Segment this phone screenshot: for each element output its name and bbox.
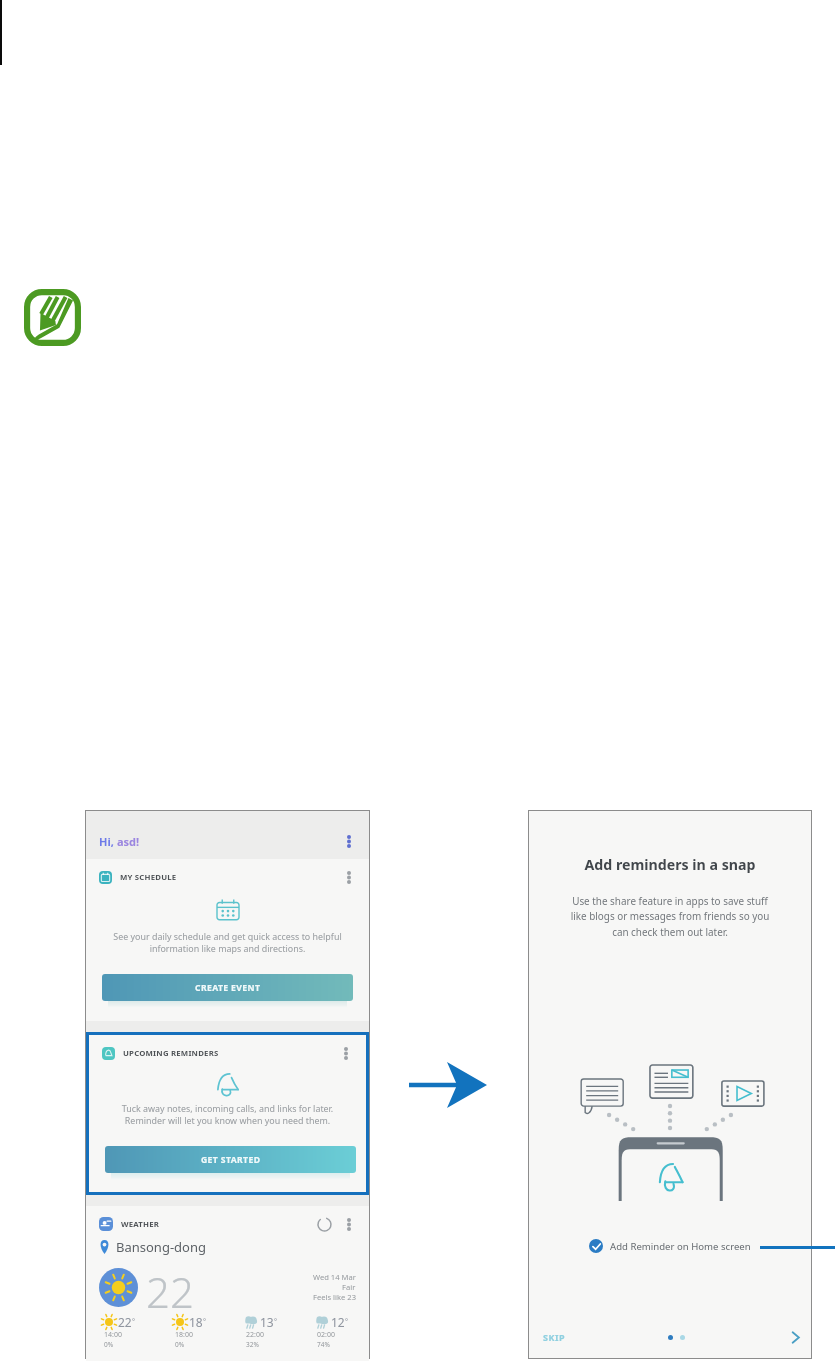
staticText: MY SCHEDULE [120, 872, 177, 883]
staticText: 18 [189, 1314, 203, 1330]
staticText: CREATE EVENT [195, 982, 261, 994]
button[interactable]: More options [342, 870, 356, 884]
staticText: UPCOMING REMINDERS [123, 1048, 219, 1059]
staticText: WEATHER [121, 1219, 160, 1230]
button[interactable]: More options [342, 834, 356, 848]
button[interactable]: CREATE EVENT [102, 974, 353, 1001]
staticText: Wed 14 Mar [313, 1272, 356, 1282]
staticText: Add reminders in a snap [529, 855, 811, 874]
staticText: 22 [118, 1314, 132, 1330]
button[interactable]: GET STARTED [105, 1146, 356, 1173]
staticText: 0% [175, 1340, 185, 1349]
staticText: 74% [317, 1340, 330, 1349]
staticText: Tuck away notes, incoming calls, and lin… [89, 1102, 366, 1127]
staticText: Add Reminder on Home screen [610, 1240, 751, 1253]
staticText: Fair [342, 1282, 356, 1292]
staticText: Bansong-dong [116, 1238, 206, 1256]
button[interactable]: SKIP [541, 1329, 568, 1345]
staticText: ° [274, 1317, 277, 1327]
staticText: 14:00 [104, 1330, 122, 1340]
staticText: asd! [117, 834, 140, 849]
button[interactable]: More options [339, 1046, 353, 1060]
staticText: ° [132, 1317, 135, 1327]
staticText: Feels like 23 [313, 1292, 356, 1302]
staticText: ° [203, 1317, 206, 1327]
staticText: 02:00 [317, 1330, 335, 1340]
button[interactable]: More options [342, 1217, 356, 1231]
staticText: 22 [146, 1263, 194, 1311]
staticText: 22:00 [246, 1330, 264, 1340]
staticText: Use the share feature in apps to save st… [529, 894, 811, 939]
staticText: 13 [260, 1314, 274, 1330]
staticText: 18:00 [175, 1330, 193, 1340]
staticText: See your daily schedule and get quick ac… [86, 930, 369, 955]
staticText: Hi, [99, 834, 117, 849]
staticText: GET STARTED [201, 1154, 261, 1166]
staticText: 12 [331, 1314, 345, 1330]
staticText: SKIP [543, 1331, 566, 1343]
staticText: ° [345, 1317, 348, 1327]
button[interactable]: Next [786, 1328, 804, 1346]
button[interactable]: Refresh [316, 1216, 332, 1232]
staticText: 32% [246, 1340, 259, 1349]
staticText: 0% [104, 1340, 114, 1349]
button[interactable]: Add Reminder on Home screen [589, 1239, 751, 1253]
